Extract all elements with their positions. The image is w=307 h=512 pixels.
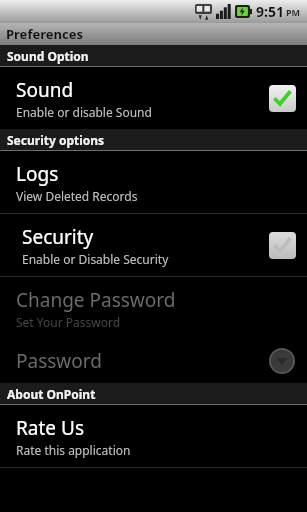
staticText: Sound: [16, 77, 74, 103]
button[interactable]: Sound: [0, 67, 307, 129]
staticText: Security: [22, 224, 94, 250]
staticText: Enable or disable Sound: [16, 104, 152, 120]
button[interactable]: Password: [0, 339, 307, 383]
button[interactable]: Toggle Sound: [267, 83, 297, 113]
staticText: Preferences: [6, 25, 83, 43]
staticText: Rate this application: [16, 442, 131, 458]
staticText: Set Your Password: [16, 314, 121, 330]
staticText: Enable or Disable Security: [22, 251, 169, 267]
staticText: 9:51: [256, 2, 284, 21]
staticText: Change Password: [16, 287, 176, 313]
staticText: Sound Option: [7, 48, 89, 64]
button[interactable]: Open password options: [267, 346, 297, 376]
button[interactable]: Security: [0, 214, 307, 276]
staticText: Logs: [16, 161, 59, 187]
staticText: Security options: [7, 132, 105, 148]
button[interactable]: Rate Us: [0, 405, 307, 467]
staticText: View Deleted Records: [16, 188, 138, 204]
button[interactable]: Logs: [0, 151, 307, 213]
button[interactable]: Toggle Security: [267, 230, 297, 260]
staticText: About OnPoint: [7, 386, 96, 402]
staticText: PM: [286, 6, 301, 18]
staticText: Password: [16, 348, 102, 374]
button[interactable]: Change Password: [0, 277, 307, 339]
staticText: Rate Us: [16, 415, 84, 441]
